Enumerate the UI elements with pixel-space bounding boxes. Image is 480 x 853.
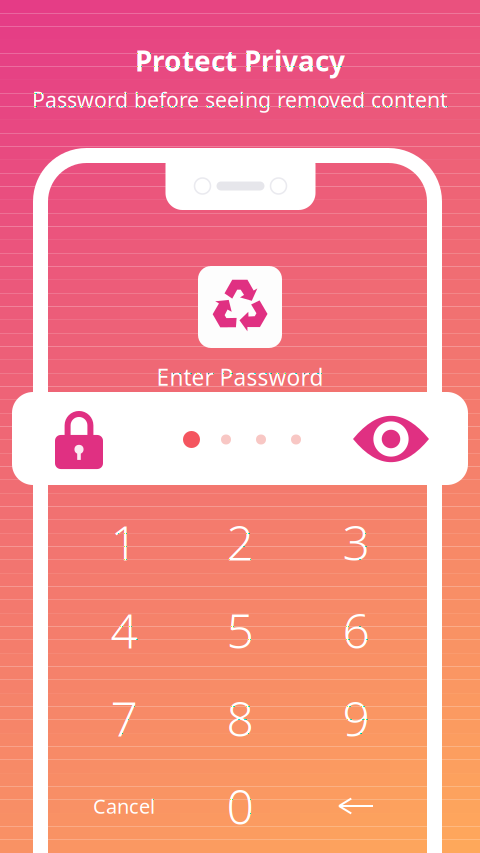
button[interactable]: 6 xyxy=(298,586,414,674)
staticText: 0 xyxy=(226,774,253,838)
button[interactable]: 2 xyxy=(182,498,298,586)
staticText: 1 xyxy=(110,510,137,574)
button[interactable]: 9 xyxy=(298,674,414,762)
staticText: Cancel xyxy=(93,793,155,819)
staticText: Enter Password xyxy=(156,362,323,392)
button[interactable]: Locked xyxy=(41,401,117,479)
staticText: Protect Privacy xyxy=(135,42,345,79)
staticText: 7 xyxy=(110,686,137,750)
button[interactable]: 8 xyxy=(182,674,298,762)
button[interactable]: 0 xyxy=(182,762,298,850)
button[interactable]: 5 xyxy=(182,586,298,674)
button[interactable]: 7 xyxy=(66,674,182,762)
staticText: 5 xyxy=(226,598,253,662)
staticText: 8 xyxy=(226,686,253,750)
button[interactable]: Delete xyxy=(298,762,414,850)
button[interactable]: 3 xyxy=(298,498,414,586)
staticText: 9 xyxy=(342,686,369,750)
staticText: 4 xyxy=(110,598,137,662)
button[interactable]: 4 xyxy=(66,586,182,674)
staticText: 6 xyxy=(342,598,369,662)
button[interactable]: 1 xyxy=(66,498,182,586)
staticText: Password before seeing removed content xyxy=(32,85,448,113)
staticText: 2 xyxy=(226,510,253,574)
button[interactable]: Show password xyxy=(341,404,441,474)
button[interactable]: Cancel xyxy=(66,762,182,850)
staticText: 3 xyxy=(342,510,369,574)
